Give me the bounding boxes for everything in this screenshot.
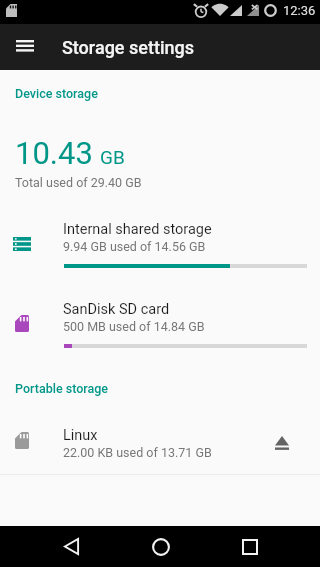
- staticText: Device storage: [15, 86, 98, 101]
- staticText: Storage settings: [62, 37, 195, 58]
- staticText: Portable storage: [15, 381, 109, 396]
- staticText: Linux: [63, 427, 98, 444]
- staticText: GB: [100, 146, 125, 168]
- button[interactable]: Open navigation drawer: [4, 24, 45, 70]
- staticText: SanDisk SD card: [63, 301, 170, 318]
- button[interactable]: Home: [137, 526, 185, 567]
- staticText: 22.00 KB used of 13.71 GB: [63, 445, 212, 460]
- button[interactable]: Back: [47, 526, 95, 567]
- staticText: Total used of 29.40 GB: [15, 175, 142, 190]
- staticText: 9.94 GB used of 14.56 GB: [63, 239, 206, 254]
- button[interactable]: SanDisk SD card: [0, 286, 320, 362]
- staticText: 12:36: [283, 3, 316, 18]
- staticText: Internal shared storage: [63, 221, 212, 238]
- button[interactable]: Eject: [263, 424, 301, 462]
- button[interactable]: Recent apps: [226, 526, 274, 567]
- button[interactable]: Internal shared storage: [0, 206, 320, 282]
- staticText: 10.43: [15, 135, 93, 171]
- staticText: 500 MB used of 14.84 GB: [63, 319, 205, 334]
- button[interactable]: Linux: [0, 414, 320, 470]
